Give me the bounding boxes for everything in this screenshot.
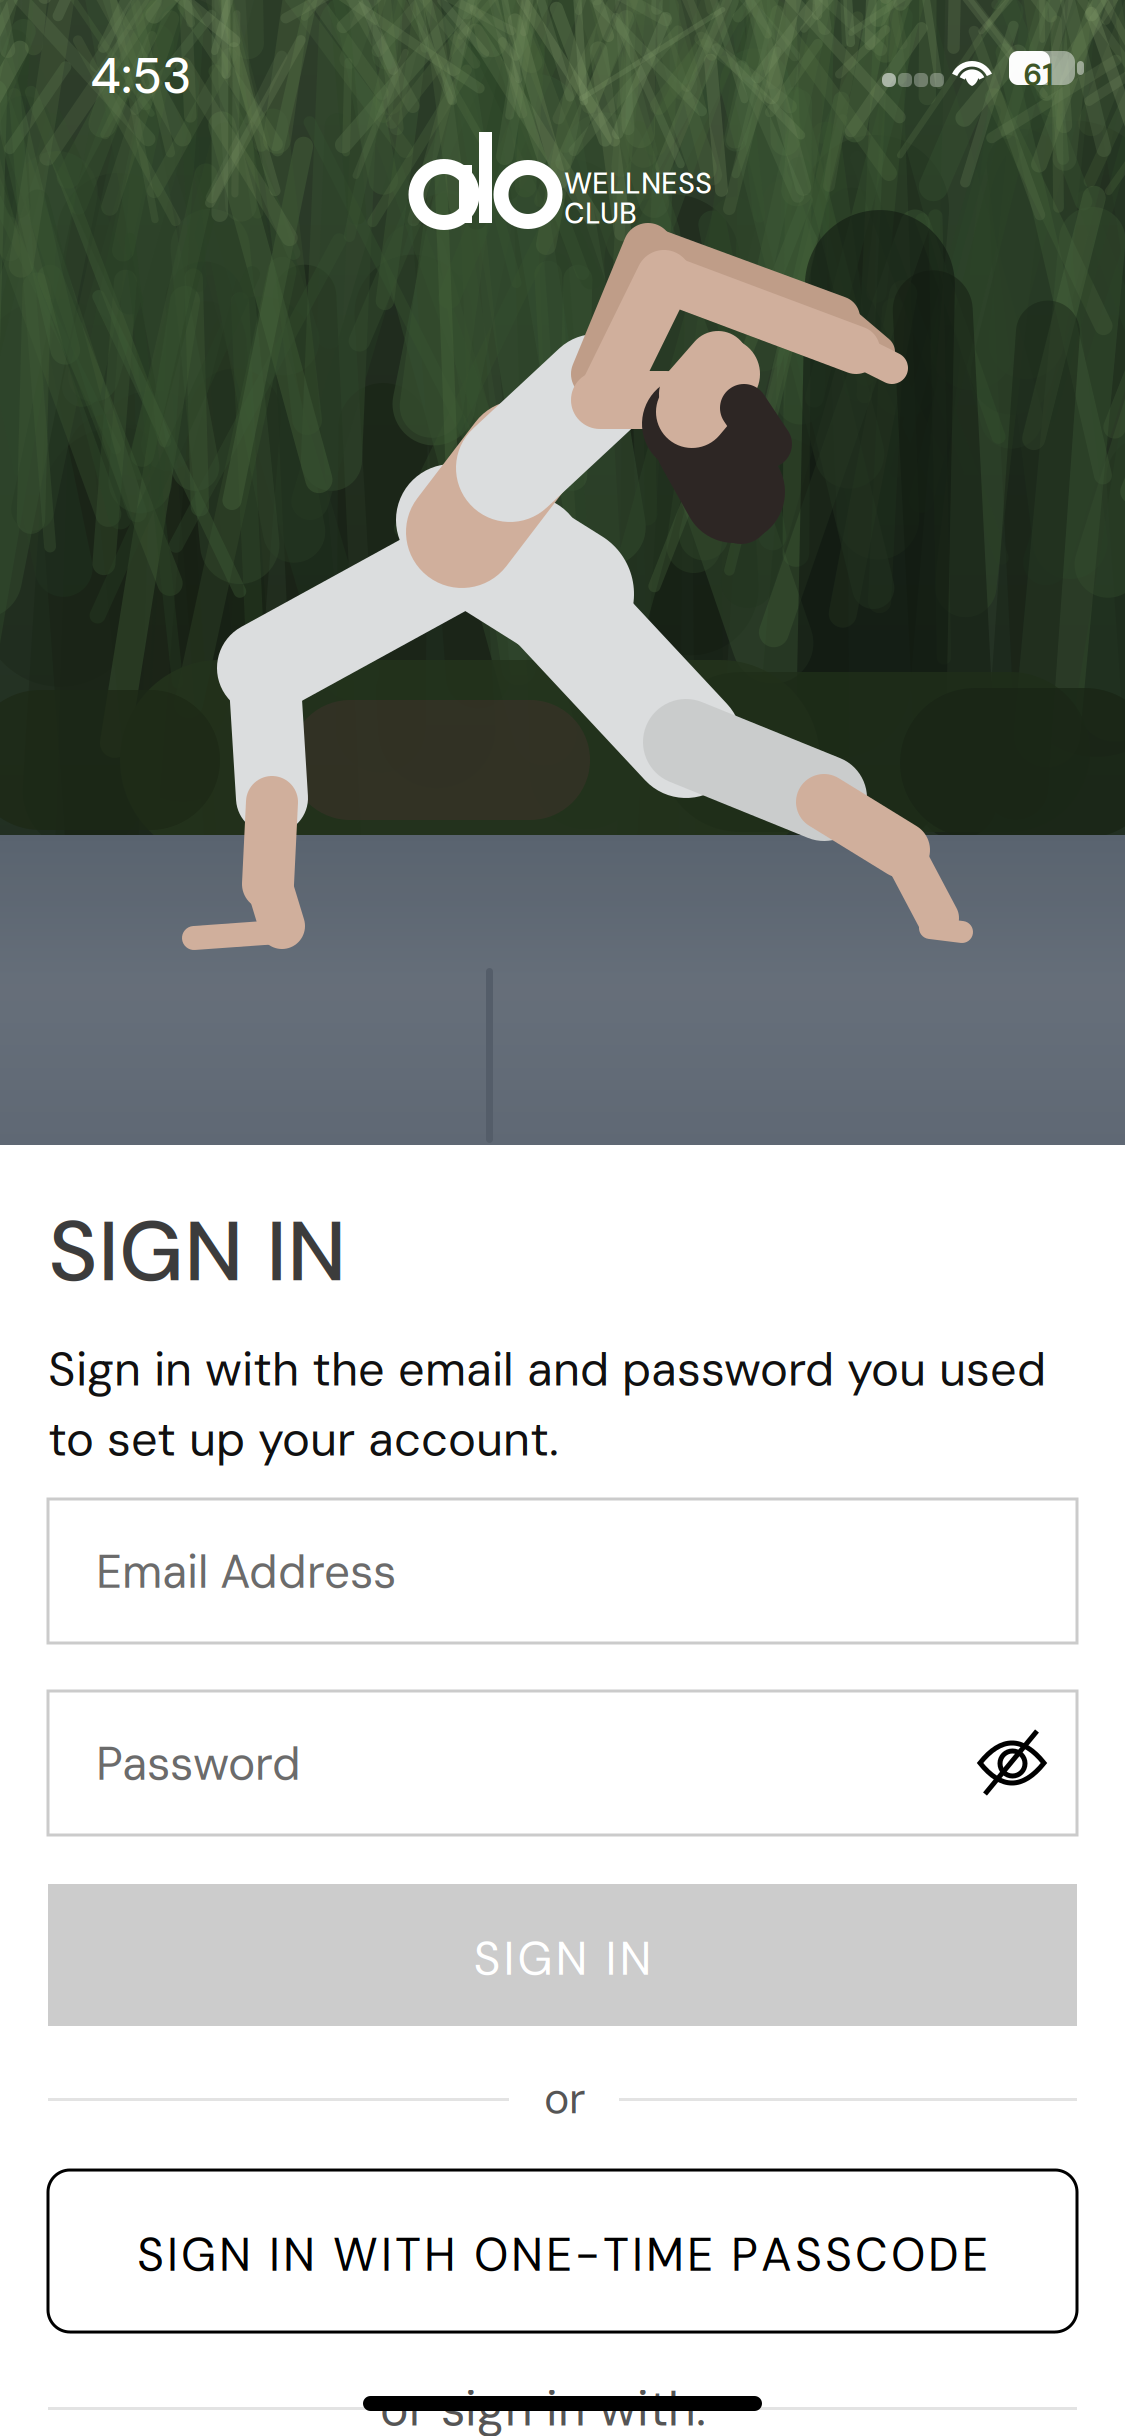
staticText: CLUB xyxy=(564,195,637,232)
staticText: S I G N I N W I T H O N E - T I M E P A … xyxy=(137,2225,988,2285)
staticText: or xyxy=(544,2071,586,2127)
staticText: Sign in with the email and password you … xyxy=(48,1339,1046,1400)
staticText: to set up your account. xyxy=(48,1409,559,1470)
button[interactable]: S I G N I N W I T H O N E - T I M E P A … xyxy=(48,2170,1077,2332)
button[interactable]: Show password xyxy=(947,1691,1077,1835)
staticText: 61 xyxy=(1023,55,1054,95)
button[interactable]: S I G N I N xyxy=(48,1884,1077,2026)
staticText: WELLNESS xyxy=(564,165,712,202)
staticText: SIGN IN xyxy=(48,1197,347,1306)
staticText: Password xyxy=(96,1734,301,1794)
staticText: S I G N I N xyxy=(473,1929,651,1989)
staticText: 4:53 xyxy=(90,44,192,108)
staticText: or sign in with: xyxy=(380,2378,706,2436)
staticText: Email Address xyxy=(96,1542,396,1602)
